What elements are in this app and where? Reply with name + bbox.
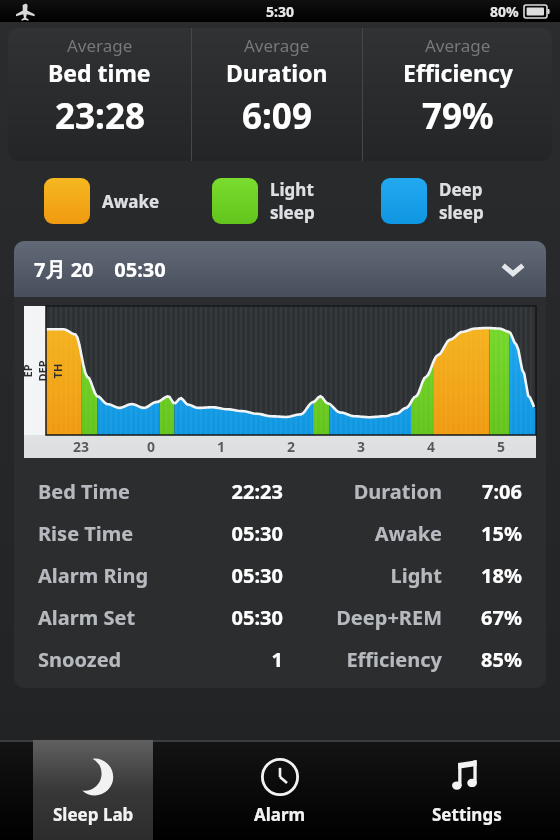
staticText: SLEEP DEPTH bbox=[14, 360, 65, 382]
staticText: 3 bbox=[326, 437, 396, 456]
button[interactable]: Average bbox=[363, 28, 552, 161]
button[interactable]: Alarm Set bbox=[38, 596, 522, 638]
staticText: 15% bbox=[456, 520, 522, 547]
staticText: Sleep Lab bbox=[53, 803, 134, 826]
staticText: 22:23 bbox=[158, 478, 283, 505]
staticText: Awake bbox=[283, 520, 442, 547]
staticText: 2 bbox=[256, 437, 326, 456]
button[interactable]: Deep bbox=[381, 178, 550, 224]
staticText: Average bbox=[425, 34, 491, 57]
button[interactable]: Average bbox=[192, 28, 362, 161]
staticText: Bed Time bbox=[38, 478, 158, 505]
staticText: 05:30 bbox=[158, 562, 283, 589]
staticText: 05:30 bbox=[158, 604, 283, 631]
button[interactable]: Bed Time bbox=[38, 470, 522, 512]
staticText: Snoozed bbox=[38, 646, 158, 673]
staticText: Settings bbox=[432, 803, 502, 826]
staticText: 5:30 bbox=[266, 2, 294, 21]
staticText: 80% bbox=[490, 2, 519, 21]
staticText: Duration bbox=[283, 478, 442, 505]
staticText: 4 bbox=[396, 437, 466, 456]
staticText: Efficiency bbox=[283, 646, 442, 673]
button[interactable]: 7月 20 05:30 bbox=[14, 241, 546, 297]
staticText: sleep bbox=[439, 201, 484, 224]
staticText: Light bbox=[283, 562, 442, 589]
staticText: Alarm bbox=[254, 803, 306, 826]
button[interactable]: Settings bbox=[407, 740, 527, 840]
staticText: 67% bbox=[456, 604, 522, 631]
staticText: 5 bbox=[466, 437, 536, 456]
other: Collapse bbox=[500, 256, 526, 282]
staticText: 05:30 bbox=[158, 520, 283, 547]
staticText: 23:28 bbox=[55, 92, 145, 140]
staticText: sleep bbox=[270, 201, 315, 224]
staticText: 1 bbox=[158, 646, 283, 673]
staticText: 85% bbox=[456, 646, 522, 673]
staticText: Deep+REM bbox=[283, 604, 442, 631]
staticText: Bed time bbox=[48, 57, 151, 88]
staticText: Awake bbox=[102, 190, 160, 213]
staticText: 0 bbox=[116, 437, 186, 456]
button[interactable]: Snoozed bbox=[38, 638, 522, 680]
staticText: 6:09 bbox=[242, 92, 312, 140]
button[interactable]: Awake bbox=[44, 178, 212, 224]
button[interactable]: Sleep Lab bbox=[33, 740, 153, 840]
staticText: Duration bbox=[226, 57, 328, 88]
button[interactable]: Alarm bbox=[220, 740, 340, 840]
staticText: 7月 20 05:30 bbox=[34, 256, 166, 283]
staticText: 79% bbox=[422, 92, 494, 140]
button[interactable]: Rise Time bbox=[38, 512, 522, 554]
staticText: 18% bbox=[456, 562, 522, 589]
staticText: Alarm Set bbox=[38, 604, 158, 631]
button[interactable]: Alarm Ring bbox=[38, 554, 522, 596]
button[interactable]: Average bbox=[8, 28, 191, 161]
button[interactable]: Light bbox=[212, 178, 381, 224]
staticText: Deep bbox=[439, 178, 483, 201]
staticText: Rise Time bbox=[38, 520, 158, 547]
staticText: Average bbox=[244, 34, 310, 57]
staticText: Light bbox=[270, 178, 314, 201]
staticText: Efficiency bbox=[403, 57, 513, 88]
staticText: 1 bbox=[186, 437, 256, 456]
staticText: 23 bbox=[46, 437, 116, 456]
staticText: Alarm Ring bbox=[38, 562, 158, 589]
staticText: 7:06 bbox=[456, 478, 522, 505]
staticText: Average bbox=[67, 34, 133, 57]
